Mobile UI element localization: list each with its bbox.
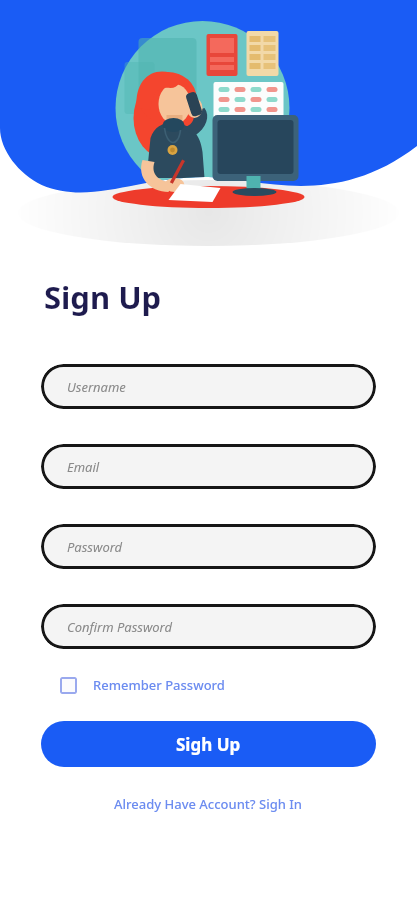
staticText: Sigh Up: [176, 733, 241, 756]
staticText: Password: [67, 538, 123, 556]
staticText: Username: [67, 378, 126, 396]
button[interactable]: Sigh Up: [41, 721, 376, 767]
staticText: Confirm Password: [67, 618, 173, 636]
staticText: Remember Password: [93, 676, 225, 694]
button[interactable]: Password: [41, 524, 376, 569]
button[interactable]: Remember Password: [56, 672, 229, 698]
staticText: Already Have Account? Sigh In: [114, 795, 303, 813]
button[interactable]: Username: [41, 364, 376, 409]
button[interactable]: Already Have Account? Sigh In: [108, 789, 309, 819]
staticText: Sign Up: [44, 276, 162, 318]
staticText: Email: [67, 458, 100, 476]
button[interactable]: Confirm Password: [41, 604, 376, 649]
button[interactable]: Email: [41, 444, 376, 489]
